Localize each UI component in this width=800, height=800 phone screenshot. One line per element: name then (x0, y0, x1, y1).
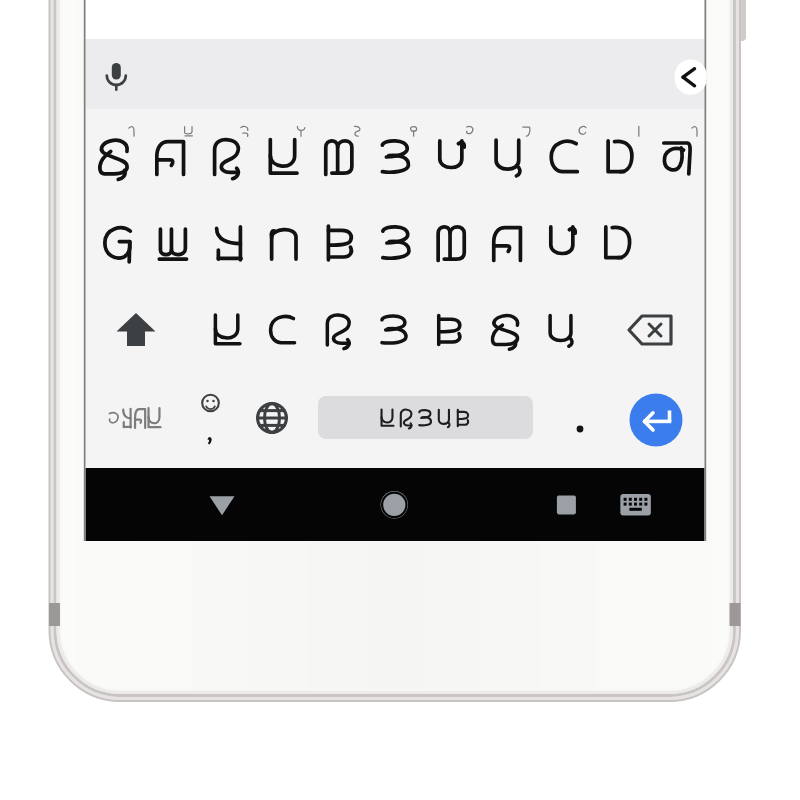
button[interactable] (244, 199, 295, 287)
button[interactable] (292, 109, 344, 197)
button[interactable] (345, 199, 396, 287)
button[interactable] (294, 199, 345, 287)
button[interactable]: Symbols (86, 374, 182, 468)
button[interactable] (143, 199, 194, 287)
button[interactable] (447, 109, 499, 197)
button[interactable] (352, 287, 401, 374)
button[interactable]: Enter (629, 393, 683, 447)
button[interactable] (601, 109, 653, 197)
button[interactable] (498, 109, 550, 197)
button[interactable]: Change keyboard (605, 468, 665, 541)
button[interactable]: Hide keyboard (182, 468, 262, 541)
button[interactable] (205, 287, 254, 374)
button[interactable] (193, 199, 244, 287)
button[interactable] (318, 396, 533, 439)
button[interactable]: Shift (86, 287, 186, 374)
button[interactable]: Emoji (182, 374, 238, 468)
button[interactable]: Home (354, 468, 434, 541)
button[interactable] (303, 287, 352, 374)
button[interactable] (446, 199, 497, 287)
button[interactable]: Voice input (92, 44, 150, 104)
button[interactable] (549, 287, 598, 374)
button[interactable] (550, 109, 602, 197)
button[interactable] (500, 287, 549, 374)
button[interactable] (395, 199, 446, 287)
button[interactable] (653, 109, 705, 197)
button[interactable] (451, 287, 500, 374)
button[interactable] (395, 109, 447, 197)
button[interactable] (343, 109, 395, 197)
button[interactable]: Period (552, 374, 608, 468)
button[interactable] (92, 199, 143, 287)
button[interactable] (137, 109, 189, 197)
button[interactable] (547, 199, 598, 287)
button[interactable]: Switch language (242, 374, 302, 468)
button[interactable] (496, 199, 547, 287)
button[interactable]: More suggestions (659, 54, 705, 94)
button[interactable] (401, 287, 450, 374)
button[interactable]: Backspace (604, 287, 704, 374)
button[interactable] (189, 109, 241, 197)
button[interactable] (597, 199, 648, 287)
button[interactable] (86, 109, 138, 197)
button[interactable] (254, 287, 303, 374)
button[interactable] (240, 109, 292, 197)
button[interactable]: Recent apps (527, 468, 603, 541)
